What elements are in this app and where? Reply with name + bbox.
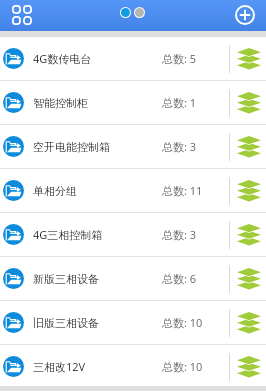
staticText: 总数: 3 xyxy=(162,227,197,242)
button[interactable]: 空开电能控制箱 xyxy=(0,125,266,169)
staticText: 总数: 6 xyxy=(162,271,197,286)
button[interactable]: Page one xyxy=(121,8,130,17)
staticText: 总数: 10 xyxy=(162,315,203,330)
button[interactable]: 新版三相设备 xyxy=(0,257,266,301)
staticText: 4G三相控制箱 xyxy=(33,227,103,242)
staticText: 4G数传电台 xyxy=(33,51,92,66)
staticText: 空开电能控制箱 xyxy=(33,140,110,154)
staticText: 单相分组 xyxy=(33,184,77,198)
staticText: 总数: 11 xyxy=(162,183,203,198)
staticText: 总数: 10 xyxy=(162,359,203,374)
button[interactable]: 4G三相控制箱 xyxy=(0,213,266,257)
button[interactable]: 三相改12V xyxy=(0,345,266,389)
staticText: 智能控制柜 xyxy=(33,96,88,110)
staticText: 总数: 1 xyxy=(162,95,197,110)
button[interactable]: Page two xyxy=(135,8,144,17)
button[interactable]: 单相分组 xyxy=(0,169,266,213)
button[interactable]: Apps xyxy=(4,0,40,29)
button[interactable]: Add xyxy=(227,1,262,29)
button[interactable]: 4G数传电台 xyxy=(0,37,266,81)
staticText: 总数: 3 xyxy=(162,139,197,154)
staticText: 三相改12V xyxy=(33,359,86,374)
staticText: 旧版三相设备 xyxy=(33,316,99,330)
staticText: 总数: 5 xyxy=(162,51,197,66)
staticText: 新版三相设备 xyxy=(33,272,99,286)
button[interactable]: 智能控制柜 xyxy=(0,81,266,125)
button[interactable]: 旧版三相设备 xyxy=(0,301,266,345)
